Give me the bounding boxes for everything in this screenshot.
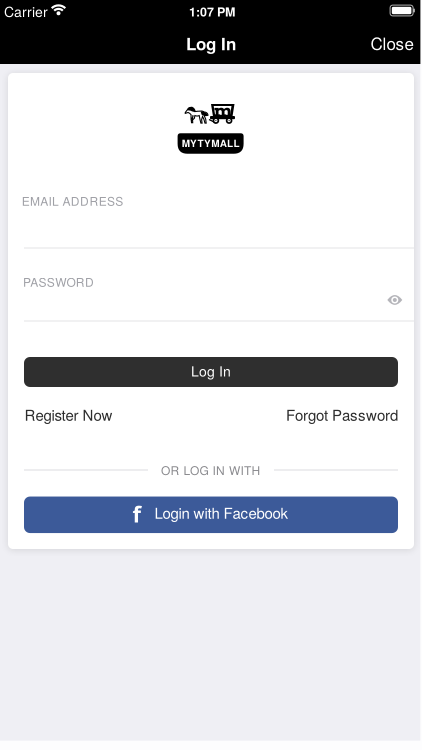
button[interactable]: f [24, 496, 398, 533]
staticText: Forgot Password [286, 404, 398, 425]
staticText: Register Now [24, 404, 112, 425]
button[interactable]: Register Now [24, 404, 112, 425]
button[interactable]: Close [359, 26, 422, 60]
button[interactable]: Log In [24, 357, 398, 387]
staticText: PASSWORD [23, 273, 94, 290]
staticText: Log In [186, 31, 236, 55]
staticText: f [132, 499, 141, 529]
staticText: Login with Facebook [154, 502, 288, 523]
button[interactable]: Forgot Password [286, 404, 398, 425]
staticText: MYTYMALL [182, 136, 239, 150]
staticText: OR LOG IN WITH [161, 461, 260, 478]
staticText: EMAIL ADDRESS [22, 192, 123, 209]
staticText: Carrier [4, 1, 48, 21]
staticText: 1:07 PM [189, 2, 235, 20]
button[interactable]: Show Password [380, 288, 410, 312]
staticText: m [214, 100, 232, 121]
staticText: Log In [191, 360, 231, 380]
staticText: Close [370, 30, 413, 55]
